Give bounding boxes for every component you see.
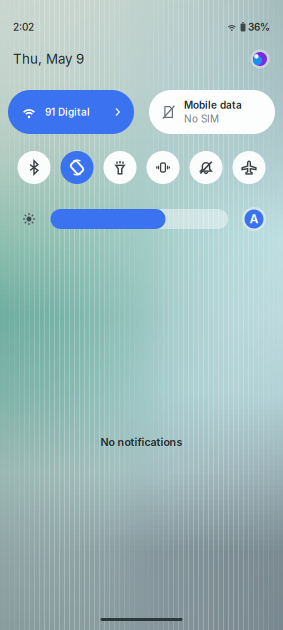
button[interactable]: Do not disturb xyxy=(189,151,222,184)
staticText: Mobile data xyxy=(184,99,242,111)
button[interactable]: Profile xyxy=(250,49,270,69)
button[interactable]: 91 Digital xyxy=(8,90,134,134)
button[interactable]: Flashlight xyxy=(103,151,136,184)
staticText: 91 Digital xyxy=(45,106,90,118)
staticText: A xyxy=(249,212,258,226)
staticText: No notifications xyxy=(100,435,182,448)
button[interactable]: Airplane mode xyxy=(232,151,265,184)
staticText: 2:02 xyxy=(13,21,34,33)
staticText: No SIM xyxy=(184,113,219,125)
button[interactable]: Vibrate xyxy=(146,151,179,184)
button[interactable]: Auto brightness xyxy=(242,207,266,231)
button[interactable]: Auto rotate xyxy=(60,151,93,184)
button[interactable]: Bluetooth xyxy=(17,151,50,184)
staticText: 36% xyxy=(248,21,270,33)
staticText: Thu, May 9 xyxy=(13,51,84,67)
button[interactable]: Mobile data xyxy=(149,90,275,134)
